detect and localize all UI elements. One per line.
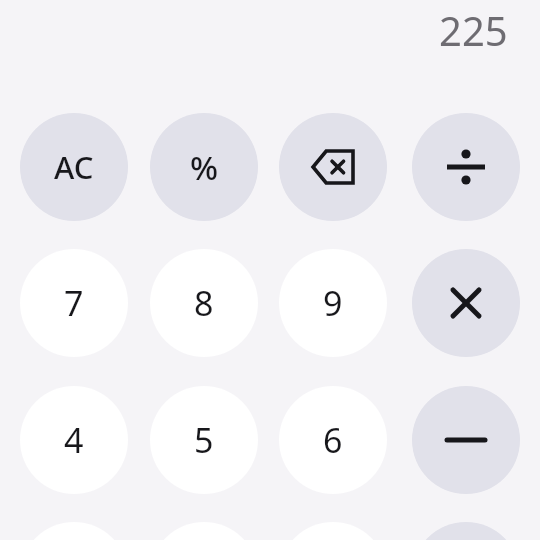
button[interactable]: Minus: [412, 386, 520, 494]
staticText: 6: [323, 417, 343, 463]
button[interactable]: 4: [20, 386, 128, 494]
button[interactable]: Plus: [412, 522, 520, 540]
staticText: 7: [64, 280, 84, 326]
staticText: 8: [194, 280, 214, 326]
button[interactable]: 2: [150, 522, 258, 540]
staticText: 9: [323, 280, 343, 326]
button[interactable]: Backspace: [279, 113, 387, 221]
button[interactable]: 7: [20, 249, 128, 357]
staticText: 4: [64, 417, 84, 463]
button[interactable]: 6: [279, 386, 387, 494]
button[interactable]: Percent: [150, 113, 258, 221]
button[interactable]: 3: [279, 522, 387, 540]
staticText: AC: [54, 146, 94, 188]
button[interactable]: 9: [279, 249, 387, 357]
button[interactable]: Multiply: [412, 249, 520, 357]
button[interactable]: Divide: [412, 113, 520, 221]
button[interactable]: 1: [20, 522, 128, 540]
button[interactable]: 8: [150, 249, 258, 357]
staticText: 5: [194, 417, 214, 463]
button[interactable]: 5: [150, 386, 258, 494]
staticText: %: [190, 145, 219, 190]
button[interactable]: All clear: [20, 113, 128, 221]
staticText: 225: [439, 3, 508, 57]
